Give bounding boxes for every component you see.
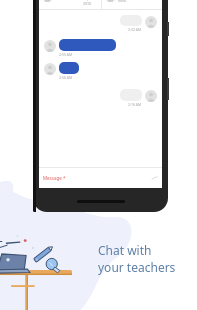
button[interactable]: 2:16 AM	[44, 89, 157, 107]
staticText: Nov 17, 2018	[83, 0, 93, 6]
staticText: Message *	[43, 175, 66, 181]
button[interactable]: Contact avatar	[44, 39, 157, 57]
staticText: hello	[118, 0, 127, 3]
staticText: 2:56 AM	[59, 75, 73, 80]
staticText: 2:32 AM	[128, 27, 142, 32]
staticText: 2:55 AM	[59, 52, 73, 57]
button[interactable]: Contact avatar	[39, 0, 101, 9]
button[interactable]: Contact avatar	[44, 62, 157, 80]
staticText: your teachers	[98, 259, 176, 275]
staticText: 2:16 AM	[128, 102, 142, 107]
button[interactable]: Contact avatar	[42, 0, 53, 2]
button[interactable]: Contact avatar	[44, 63, 56, 75]
button[interactable]: Contact avatar	[145, 90, 157, 102]
button[interactable]: Contact avatar	[145, 16, 157, 28]
button[interactable]: Contact avatar	[102, 0, 162, 9]
button[interactable]: Message *	[39, 168, 162, 188]
button[interactable]: Chat with	[98, 242, 190, 275]
button[interactable]: Contact avatar	[44, 40, 56, 52]
button[interactable]: 2:32 AM	[44, 15, 157, 32]
button[interactable]: Contact avatar	[105, 0, 116, 2]
staticText: Chat with	[98, 242, 152, 258]
